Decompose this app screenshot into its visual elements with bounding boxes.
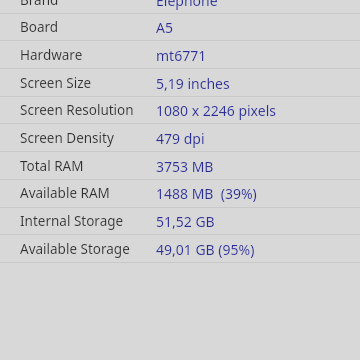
staticText: Board xyxy=(20,18,59,36)
staticText: Total RAM xyxy=(20,157,84,175)
button[interactable]: Available Storage xyxy=(0,235,360,263)
button[interactable]: Screen Density xyxy=(0,124,360,152)
staticText: 51,52 GB xyxy=(156,212,215,231)
staticText: A5 xyxy=(156,18,173,37)
button[interactable]: Available RAM xyxy=(0,179,360,207)
staticText: Internal Storage xyxy=(20,212,124,230)
button[interactable]: Screen Size xyxy=(0,69,360,97)
staticText: 5,19 inches xyxy=(156,74,230,93)
staticText: Screen Density xyxy=(20,129,114,147)
button[interactable]: Internal Storage xyxy=(0,207,360,235)
staticText: 1488 MB (39%) xyxy=(156,184,257,203)
button[interactable]: Total RAM xyxy=(0,152,360,180)
button[interactable]: Hardware xyxy=(0,41,360,69)
staticText: Screen Resolution xyxy=(20,101,134,119)
staticText: 1080 x 2246 pixels xyxy=(156,101,276,120)
button[interactable]: Brand xyxy=(0,0,360,14)
staticText: mt6771 xyxy=(156,46,207,65)
staticText: Elephone xyxy=(156,0,218,10)
staticText: Screen Size xyxy=(20,74,92,92)
staticText: Available RAM xyxy=(20,184,110,202)
button[interactable]: Board xyxy=(0,13,360,41)
staticText: 49,01 GB (95%) xyxy=(156,240,255,259)
staticText: 3753 MB xyxy=(156,157,214,176)
button[interactable]: Screen Resolution xyxy=(0,96,360,124)
staticText: Brand xyxy=(20,0,59,9)
staticText: Available Storage xyxy=(20,240,130,258)
staticText: Hardware xyxy=(20,46,83,64)
staticText: 479 dpi xyxy=(156,129,205,148)
